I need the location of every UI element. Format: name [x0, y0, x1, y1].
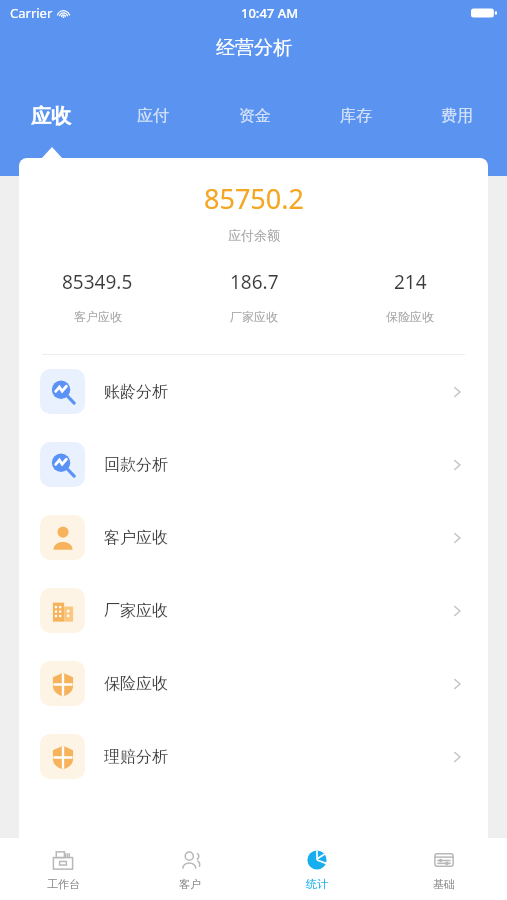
button[interactable]: 资金 — [204, 96, 305, 136]
staticText: 工作台 — [47, 877, 80, 891]
staticText: 统计 — [306, 877, 328, 891]
button[interactable]: 应收 — [0, 96, 102, 136]
staticText: Carrier — [10, 4, 53, 22]
staticText: 客户应收 — [104, 528, 168, 548]
staticText: 186.7 — [230, 269, 279, 295]
staticText: 214 — [394, 269, 427, 295]
staticText: 经营分析 — [216, 36, 292, 60]
staticText: 回款分析 — [104, 455, 168, 475]
button[interactable]: 回款分析 — [19, 428, 488, 501]
staticText: 应付 — [137, 106, 169, 126]
staticText: 厂家应收 — [104, 601, 168, 621]
button[interactable]: 理赔分析 — [19, 720, 488, 793]
button[interactable]: 工作台 — [0, 838, 126, 900]
staticText: 应付余额 — [228, 227, 280, 243]
button[interactable]: 厂家应收 — [19, 574, 488, 647]
staticText: 基础 — [433, 877, 455, 891]
button[interactable]: 统计 — [253, 838, 380, 900]
staticText: 费用 — [441, 106, 473, 126]
staticText: 厂家应收 — [230, 309, 278, 324]
staticText: 账龄分析 — [104, 382, 168, 402]
staticText: 客户应收 — [74, 309, 122, 324]
staticText: 资金 — [239, 106, 271, 126]
button[interactable]: 应付 — [102, 96, 204, 136]
button[interactable]: 基础 — [380, 838, 507, 900]
button[interactable]: 保险应收 — [19, 647, 488, 720]
button[interactable]: 客户 — [126, 838, 253, 900]
button[interactable]: 账龄分析 — [19, 355, 488, 428]
button[interactable]: 费用 — [406, 96, 507, 136]
staticText: 应收 — [31, 104, 71, 129]
button[interactable]: 库存 — [305, 96, 406, 136]
staticText: 85349.5 — [62, 269, 133, 295]
staticText: 保险应收 — [386, 309, 434, 324]
staticText: 理赔分析 — [104, 747, 168, 767]
staticText: 客户 — [179, 877, 201, 891]
staticText: 10:47 AM — [241, 4, 299, 22]
staticText: 库存 — [340, 106, 372, 126]
staticText: 85750.2 — [204, 180, 304, 217]
staticText: 保险应收 — [104, 674, 168, 694]
button[interactable]: 客户应收 — [19, 501, 488, 574]
